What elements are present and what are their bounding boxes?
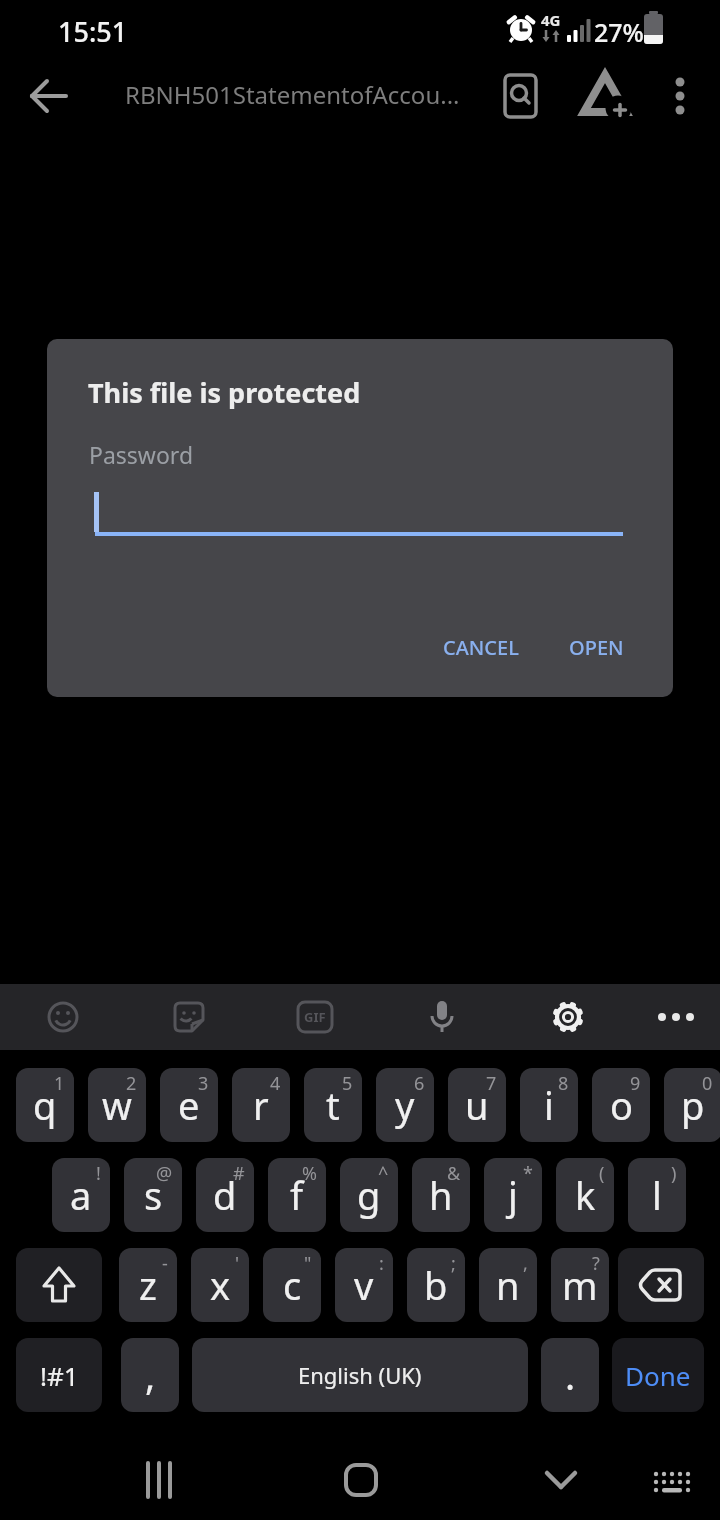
staticText: g — [357, 1169, 381, 1221]
staticText: 3 — [198, 1071, 209, 1096]
button[interactable]: a — [52, 1158, 110, 1232]
staticText: u — [465, 1079, 489, 1131]
staticText: " — [304, 1251, 312, 1276]
button[interactable] — [418, 993, 466, 1041]
staticText: n — [496, 1259, 520, 1311]
button[interactable]: !#1 — [16, 1338, 102, 1412]
button[interactable]: b — [407, 1248, 465, 1322]
button[interactable]: c — [263, 1248, 321, 1322]
button[interactable] — [496, 72, 544, 120]
button[interactable]: m — [551, 1248, 609, 1322]
button[interactable] — [16, 1248, 102, 1322]
button[interactable]: p — [664, 1068, 720, 1142]
staticText: 2 — [126, 1071, 137, 1096]
button[interactable] — [20, 72, 68, 120]
staticText: e — [178, 1079, 200, 1131]
button[interactable] — [618, 1248, 704, 1322]
staticText: ? — [592, 1251, 600, 1276]
staticText: 0 — [702, 1071, 713, 1096]
staticText: Password — [89, 439, 194, 470]
staticText: o — [610, 1079, 633, 1131]
button[interactable]: k — [556, 1158, 614, 1232]
staticText: ) — [671, 1161, 677, 1186]
staticText: r — [253, 1079, 269, 1131]
button[interactable]: e — [160, 1068, 218, 1142]
staticText: w — [102, 1079, 132, 1131]
button[interactable] — [652, 993, 700, 1041]
staticText: ! — [96, 1161, 101, 1186]
staticText: @ — [156, 1161, 173, 1186]
button[interactable]: t — [304, 1068, 362, 1142]
staticText: English (UK) — [298, 1360, 422, 1390]
staticText: 4G — [541, 10, 561, 30]
staticText: c — [283, 1259, 302, 1311]
button[interactable]: OPEN — [546, 621, 646, 673]
button[interactable]: f — [268, 1158, 326, 1232]
button[interactable] — [529, 1448, 593, 1512]
staticText: z — [139, 1259, 157, 1311]
staticText: # — [233, 1161, 245, 1186]
button[interactable]: CANCEL — [421, 621, 541, 673]
staticText: , — [523, 1251, 528, 1276]
staticText: !#1 — [40, 1358, 79, 1393]
button[interactable]: . — [541, 1338, 599, 1412]
staticText: ^ — [378, 1161, 389, 1186]
staticText: % — [302, 1161, 317, 1186]
button[interactable]: z — [119, 1248, 177, 1322]
button[interactable]: x — [191, 1248, 249, 1322]
button[interactable] — [39, 993, 87, 1041]
staticText: l — [652, 1169, 662, 1221]
button[interactable] — [656, 72, 704, 120]
button[interactable] — [580, 72, 628, 120]
staticText: . — [565, 1349, 576, 1401]
staticText: 9 — [630, 1071, 641, 1096]
staticText: * — [523, 1161, 533, 1186]
staticText: RBNH501StatementofAccou... — [125, 78, 460, 111]
button[interactable]: y — [376, 1068, 434, 1142]
staticText: 15:51 — [58, 13, 128, 50]
button[interactable]: l — [628, 1158, 686, 1232]
staticText: 4 — [270, 1071, 281, 1096]
staticText: b — [424, 1259, 448, 1311]
button[interactable]: n — [479, 1248, 537, 1322]
staticText: j — [508, 1169, 518, 1221]
button[interactable] — [329, 1448, 393, 1512]
staticText: t — [326, 1079, 340, 1131]
button[interactable]: i — [520, 1068, 578, 1142]
button[interactable]: j — [484, 1158, 542, 1232]
staticText: CANCEL — [443, 634, 519, 661]
staticText: ' — [235, 1251, 240, 1276]
button[interactable]: q — [16, 1068, 74, 1142]
staticText: ( — [599, 1161, 605, 1186]
button[interactable]: h — [412, 1158, 470, 1232]
button[interactable]: , — [121, 1338, 179, 1412]
button[interactable]: w — [88, 1068, 146, 1142]
button[interactable]: d — [196, 1158, 254, 1232]
button[interactable] — [165, 993, 213, 1041]
button[interactable] — [192, 1338, 528, 1412]
button[interactable]: Done — [612, 1338, 704, 1412]
button[interactable]: v — [335, 1248, 393, 1322]
staticText: h — [429, 1169, 453, 1221]
button[interactable] — [640, 1460, 704, 1520]
staticText: a — [70, 1169, 92, 1221]
staticText: 7 — [486, 1071, 497, 1096]
staticText: 6 — [414, 1071, 425, 1096]
button[interactable]: r — [232, 1068, 290, 1142]
button[interactable] — [544, 993, 592, 1041]
staticText: 27% — [594, 15, 644, 49]
staticText: y — [395, 1079, 415, 1131]
staticText: ; — [451, 1251, 456, 1276]
button[interactable] — [127, 1448, 191, 1512]
button[interactable]: s — [124, 1158, 182, 1232]
button[interactable]: o — [592, 1068, 650, 1142]
staticText: v — [354, 1259, 374, 1311]
staticText: i — [544, 1079, 554, 1131]
staticText: OPEN — [569, 634, 624, 661]
button[interactable]: GIF — [291, 993, 339, 1041]
staticText: GIF — [304, 1008, 326, 1026]
staticText: s — [144, 1169, 163, 1221]
staticText: Done — [625, 1358, 691, 1393]
button[interactable]: g — [340, 1158, 398, 1232]
button[interactable]: u — [448, 1068, 506, 1142]
